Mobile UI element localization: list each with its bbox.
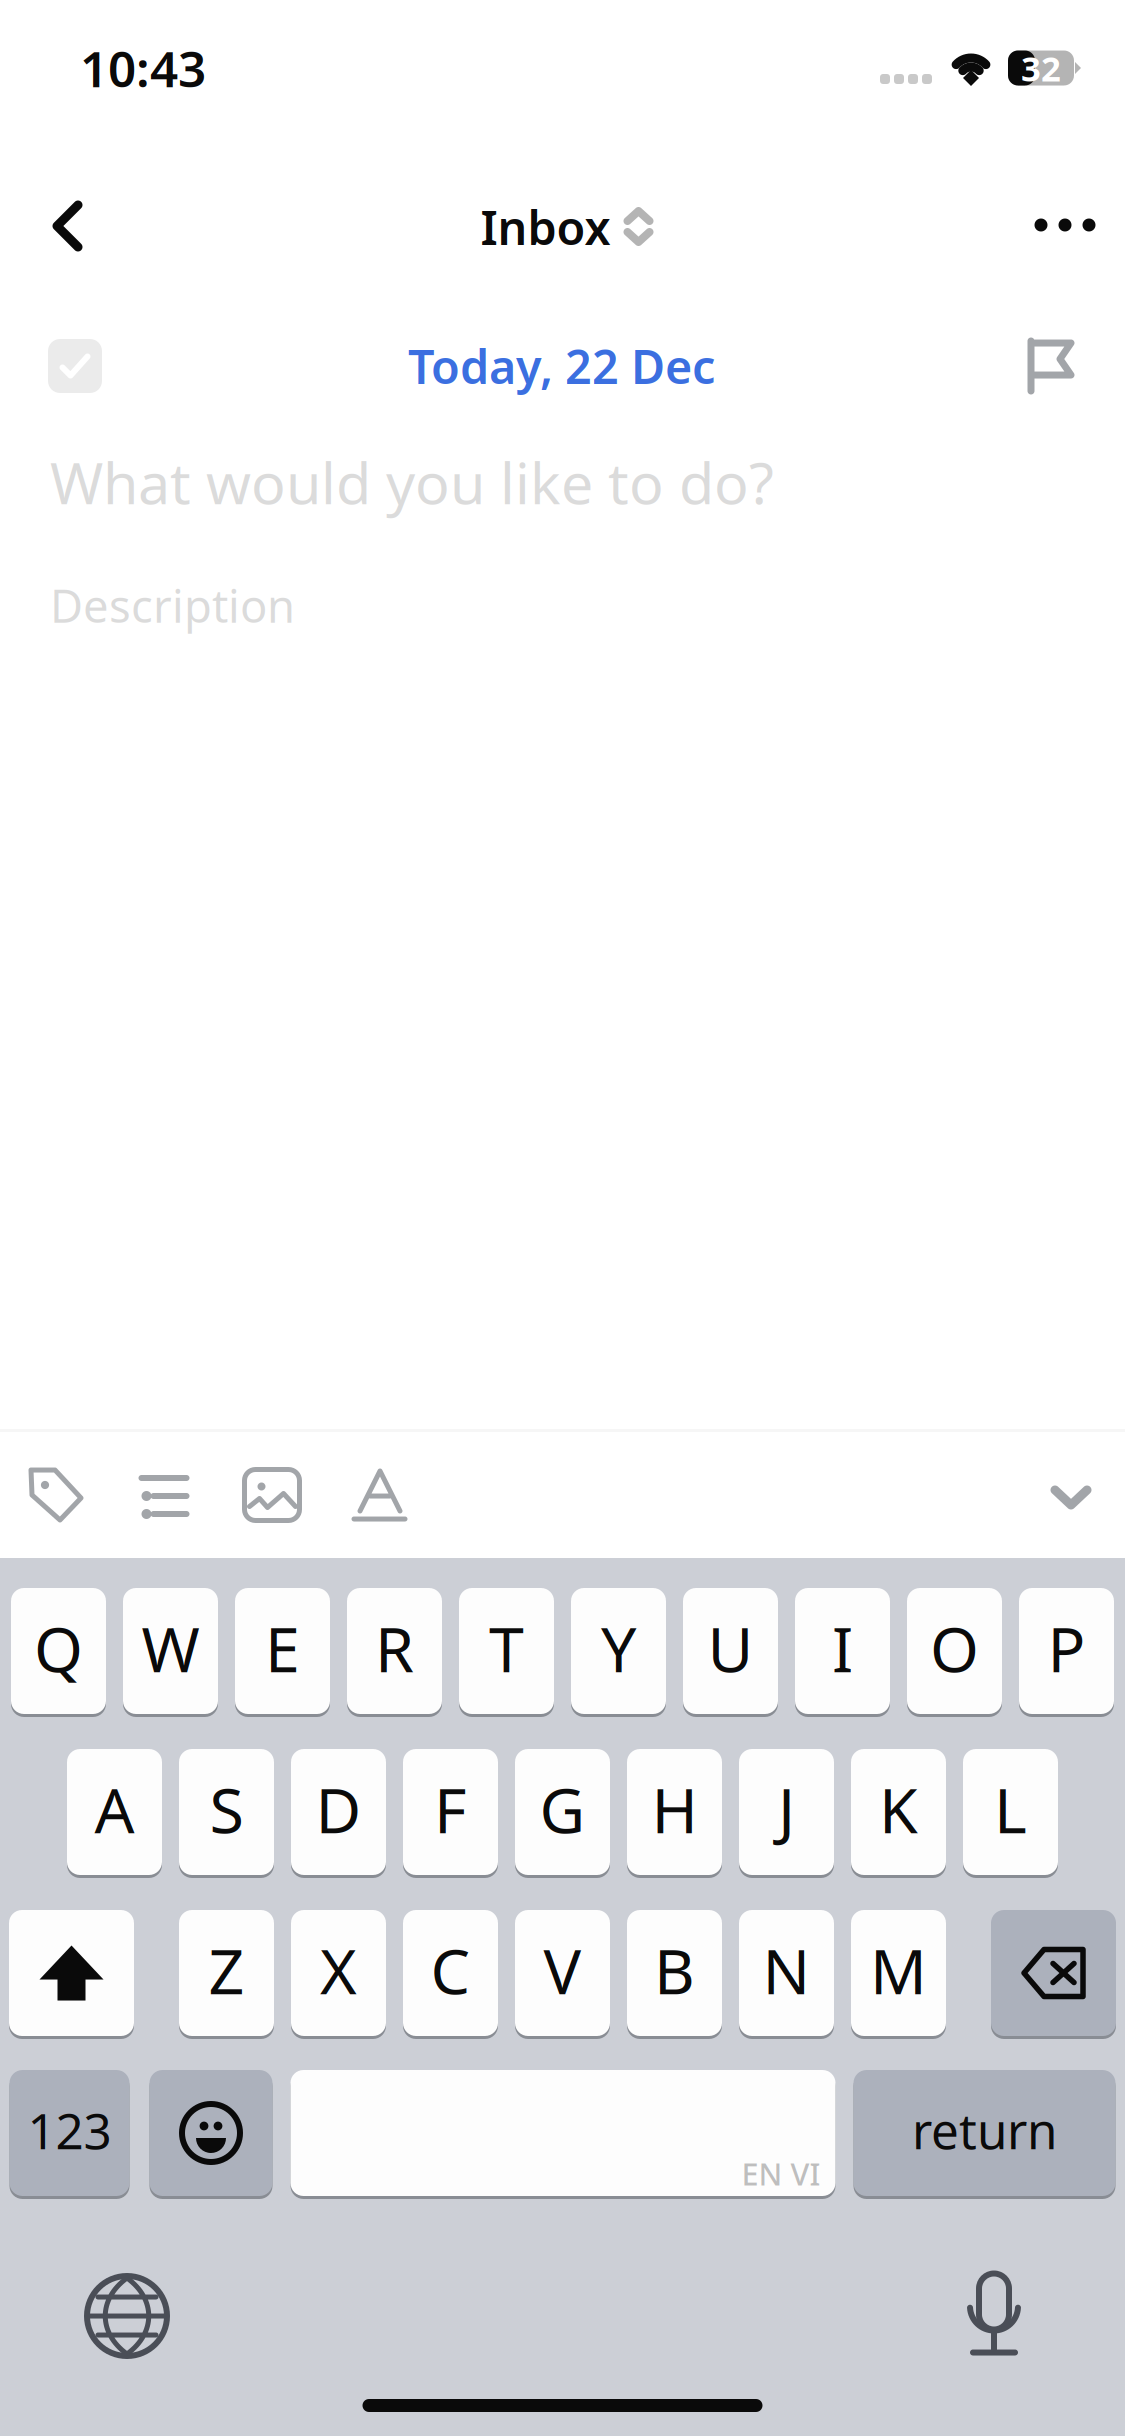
- button[interactable]: J: [739, 1747, 834, 1877]
- button[interactable]: U: [683, 1586, 778, 1716]
- button[interactable]: Hide keyboard: [1017, 1440, 1125, 1550]
- button[interactable]: S: [179, 1747, 274, 1877]
- button[interactable]: M: [851, 1908, 946, 2038]
- button[interactable]: Attach image: [218, 1443, 326, 1547]
- staticText: M: [870, 1928, 927, 2012]
- staticText: I: [832, 1606, 853, 1690]
- button[interactable]: N: [739, 1908, 834, 2038]
- button[interactable]: W: [123, 1586, 218, 1716]
- staticText: L: [994, 1767, 1027, 1851]
- staticText: P: [1047, 1606, 1085, 1690]
- staticText: K: [879, 1767, 918, 1851]
- staticText: U: [707, 1606, 753, 1690]
- staticText: EN VI: [741, 2153, 820, 2194]
- staticText: O: [930, 1606, 979, 1690]
- staticText: R: [375, 1606, 414, 1690]
- button[interactable]: B: [627, 1908, 722, 2038]
- button[interactable]: E: [235, 1586, 330, 1716]
- staticText: 123: [27, 2097, 111, 2163]
- staticText: F: [434, 1767, 467, 1851]
- staticText: 32: [1021, 45, 1061, 91]
- button[interactable]: Y: [571, 1586, 666, 1716]
- button[interactable]: C: [403, 1908, 498, 2038]
- staticText: A: [94, 1767, 134, 1851]
- button[interactable]: Delete: [991, 1908, 1116, 2038]
- staticText: Today, 22 Dec: [408, 335, 715, 397]
- button[interactable]: H: [627, 1747, 722, 1877]
- button[interactable]: I: [795, 1586, 890, 1716]
- staticText: W: [141, 1606, 199, 1690]
- button[interactable]: Complete task: [48, 323, 148, 409]
- button[interactable]: X: [291, 1908, 386, 2038]
- staticText: X: [320, 1928, 357, 2012]
- button[interactable]: D: [291, 1747, 386, 1877]
- staticText: N: [762, 1928, 810, 2012]
- button[interactable]: Tags: [2, 1443, 110, 1547]
- button[interactable]: A: [67, 1747, 162, 1877]
- staticText: What would you like to do?: [50, 444, 774, 520]
- button[interactable]: Back: [12, 178, 124, 282]
- staticText: H: [651, 1767, 697, 1851]
- staticText: 10:43: [80, 35, 206, 101]
- staticText: Y: [601, 1606, 636, 1690]
- staticText: B: [654, 1928, 695, 2012]
- button[interactable]: L: [963, 1747, 1058, 1877]
- button[interactable]: Shift: [9, 1908, 134, 2038]
- button[interactable]: Q: [11, 1586, 106, 1716]
- button[interactable]: Checklist: [110, 1443, 218, 1547]
- button[interactable]: O: [907, 1586, 1002, 1716]
- button[interactable]: T: [459, 1586, 554, 1716]
- staticText: C: [430, 1928, 470, 2012]
- staticText: D: [315, 1767, 361, 1851]
- button[interactable]: Emoji: [149, 2068, 272, 2198]
- staticText: E: [265, 1606, 300, 1690]
- button[interactable]: V: [515, 1908, 610, 2038]
- staticText: T: [489, 1606, 524, 1690]
- button[interactable]: space: [290, 2068, 835, 2198]
- button[interactable]: F: [403, 1747, 498, 1877]
- staticText: S: [209, 1767, 243, 1851]
- button[interactable]: Next keyboard: [69, 2271, 185, 2361]
- staticText: Q: [34, 1606, 83, 1690]
- button[interactable]: Dictation: [936, 2271, 1052, 2361]
- button[interactable]: Inbox: [480, 184, 652, 276]
- staticText: Inbox: [480, 196, 610, 258]
- staticText: J: [778, 1767, 795, 1851]
- button[interactable]: return: [853, 2068, 1115, 2198]
- button[interactable]: Set priority: [975, 323, 1075, 409]
- button[interactable]: P: [1019, 1586, 1114, 1716]
- button[interactable]: G: [515, 1747, 610, 1877]
- staticText: Description: [50, 575, 295, 635]
- button[interactable]: More options: [1009, 179, 1121, 281]
- staticText: G: [539, 1767, 585, 1851]
- button[interactable]: Today, 22 Dec: [408, 323, 715, 409]
- button[interactable]: 123: [9, 2068, 129, 2198]
- staticText: return: [912, 2097, 1057, 2163]
- button[interactable]: Format text: [326, 1443, 434, 1547]
- staticText: V: [543, 1928, 581, 2012]
- button[interactable]: R: [347, 1586, 442, 1716]
- button[interactable]: Z: [179, 1908, 274, 2038]
- button[interactable]: K: [851, 1747, 946, 1877]
- staticText: Z: [208, 1928, 244, 2012]
